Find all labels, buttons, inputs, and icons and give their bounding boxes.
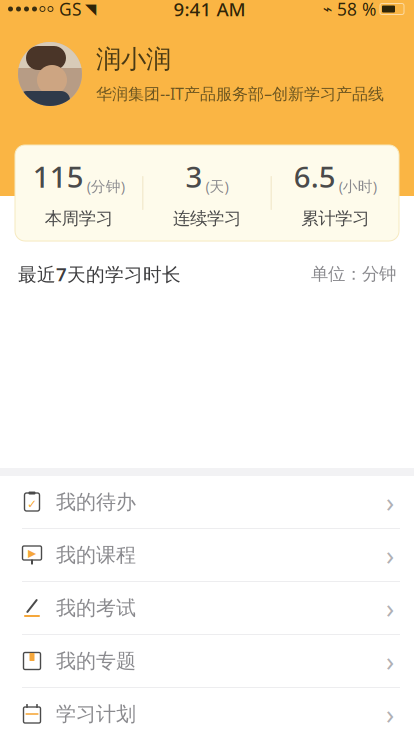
staticText: › bbox=[386, 696, 394, 732]
staticText: 0 bbox=[317, 633, 326, 654]
staticText: 本周学习 bbox=[45, 208, 113, 229]
staticText: ▶ bbox=[28, 547, 36, 559]
staticText: 12.6 bbox=[68, 693, 99, 714]
staticText: 我的待办 bbox=[56, 490, 136, 514]
staticText: › bbox=[386, 643, 394, 679]
staticText: 6.5 bbox=[294, 157, 336, 196]
button[interactable]: ▶ bbox=[0, 529, 414, 582]
staticText: 我的考试 bbox=[56, 596, 136, 620]
staticText: 学习计划 bbox=[56, 702, 136, 726]
staticText: › bbox=[386, 590, 394, 626]
staticText: › bbox=[386, 484, 394, 520]
staticText: 0 bbox=[129, 628, 138, 649]
staticText: 我的课程 bbox=[56, 543, 136, 567]
staticText: ✓ bbox=[27, 497, 37, 511]
staticText: › bbox=[386, 537, 394, 573]
staticText: 0 bbox=[267, 633, 276, 654]
staticText: 连续学习 bbox=[173, 208, 241, 229]
button[interactable]: 我的考试 bbox=[0, 582, 414, 635]
staticText: ⌁ bbox=[323, 0, 333, 18]
staticText: 0分钟 bbox=[349, 625, 393, 648]
staticText: 我的专题 bbox=[56, 649, 136, 673]
staticText: 115 bbox=[33, 157, 84, 196]
staticText: 12.5 bbox=[18, 693, 49, 714]
button[interactable]: 我的专题 bbox=[0, 635, 414, 688]
staticText: 单位：分钟 bbox=[311, 263, 396, 285]
staticText: 58 % bbox=[337, 0, 376, 20]
staticText: (分钟) bbox=[87, 176, 125, 196]
staticText: (天) bbox=[205, 176, 228, 196]
staticText: ◥ bbox=[85, 1, 96, 17]
staticText: 累计学习 bbox=[301, 208, 369, 229]
staticText: 0 bbox=[29, 633, 38, 654]
staticText: 最近7天的学习时长 bbox=[18, 262, 181, 286]
staticText: 9:41 AM bbox=[173, 0, 245, 21]
staticText: 华润集团--IT产品服务部–创新学习产品线 bbox=[96, 83, 384, 104]
staticText: 5 bbox=[79, 588, 88, 609]
button[interactable]: ✓ bbox=[0, 476, 414, 529]
staticText: GS bbox=[59, 0, 82, 20]
staticText: 12.6 bbox=[118, 693, 149, 714]
staticText: (小时) bbox=[339, 176, 377, 196]
button[interactable]: 学习计划 bbox=[0, 688, 414, 736]
staticText: 润小润 bbox=[96, 44, 171, 75]
staticText: 3 bbox=[185, 157, 202, 196]
